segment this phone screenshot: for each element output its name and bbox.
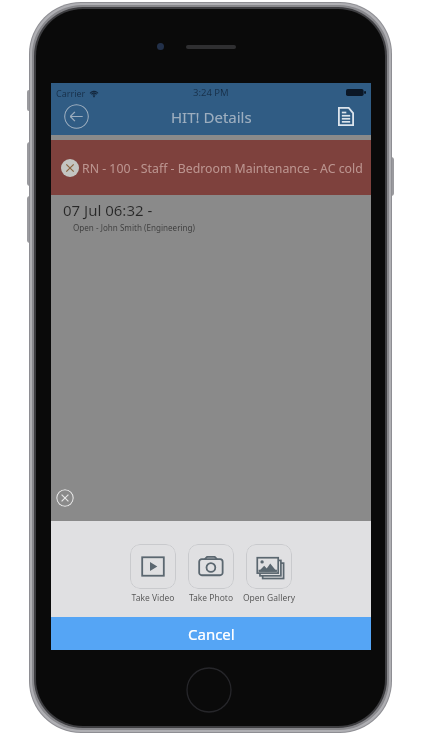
- staticText: 3:24 PM: [193, 86, 229, 99]
- button[interactable]: Back: [64, 104, 89, 129]
- staticText: Take Video: [108, 592, 198, 604]
- staticText: Open - John Smith (Engineering): [73, 222, 195, 233]
- staticText: 07 Jul 06:32 -: [63, 200, 153, 220]
- staticText: Carrier: [56, 87, 86, 99]
- button[interactable]: Document: [338, 107, 354, 126]
- button[interactable]: Take Photo: [188, 544, 234, 605]
- staticText: RN - 100 - Staff - Bedroom Maintenance -…: [82, 160, 382, 177]
- staticText: Open Gallery: [224, 592, 314, 604]
- button[interactable]: Open Gallery: [246, 544, 292, 605]
- button[interactable]: RN - 100 - Staff - Bedroom Maintenance -…: [51, 140, 371, 195]
- staticText: Cancel: [188, 624, 235, 644]
- button[interactable]: Close: [56, 489, 74, 507]
- button[interactable]: Cancel: [51, 617, 371, 650]
- staticText: Take Photo: [166, 592, 256, 604]
- button[interactable]: Take Video: [130, 544, 176, 605]
- staticText: HIT! Details: [171, 107, 252, 127]
